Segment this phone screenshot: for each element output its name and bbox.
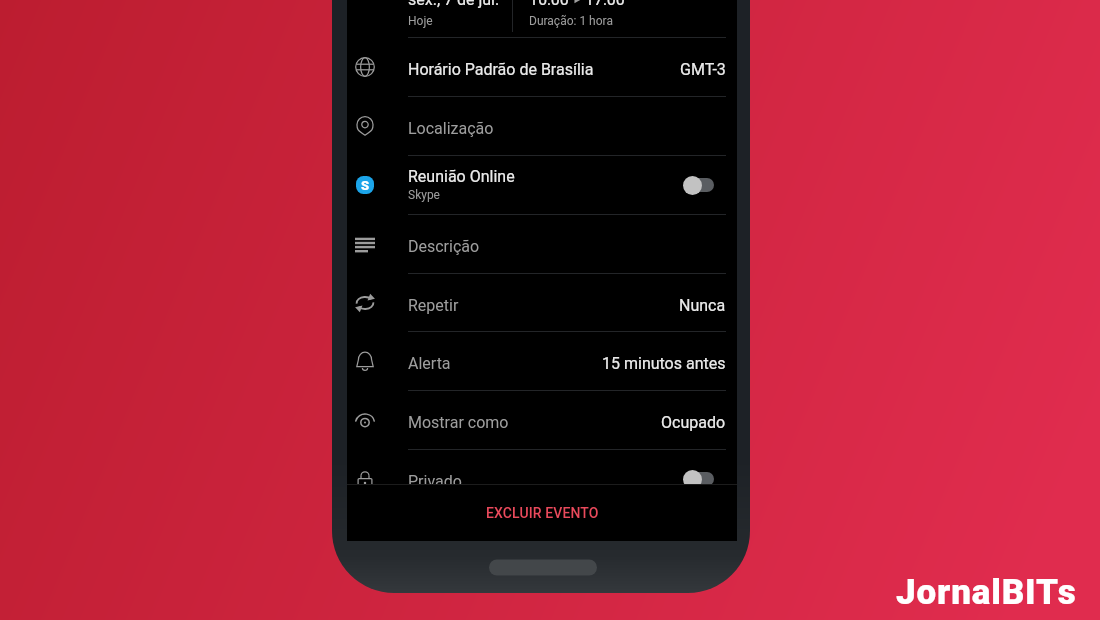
- other: Mostrar como: [347, 390, 383, 449]
- staticText: JornalBITs: [896, 572, 1077, 613]
- button[interactable]: EXCLUIR EVENTO: [347, 485, 737, 541]
- button[interactable]: Fuso horário: [347, 37, 737, 96]
- button[interactable]: sex., 7 de jul.: [347, 0, 737, 38]
- other: Repetir: [347, 273, 383, 332]
- staticText: Repetir: [408, 296, 459, 315]
- staticText: Alerta: [408, 354, 451, 373]
- staticText: Privado: [408, 472, 462, 491]
- button[interactable]: Repetir: [347, 273, 737, 332]
- staticText: GMT-3: [680, 60, 726, 79]
- staticText: Hoje: [408, 14, 433, 28]
- other: Descrição: [347, 214, 383, 273]
- staticText: Mostrar como: [408, 413, 509, 432]
- staticText: sex., 7 de jul.: [408, 0, 500, 9]
- staticText: Reunião Online: [408, 167, 515, 186]
- staticText: Duração: 1 hora: [529, 14, 613, 28]
- button[interactable]: Reunião online: [347, 155, 737, 214]
- button[interactable]: Descrição: [347, 214, 737, 273]
- staticText: Horário Padrão de Brasília: [408, 60, 594, 79]
- button[interactable]: Ativar Reunião Online: [683, 174, 714, 196]
- staticText: Skype: [408, 188, 440, 202]
- button[interactable]: Ativar Privado: [683, 468, 714, 490]
- other: Localização: [347, 96, 383, 155]
- staticText: 17:00: [585, 0, 625, 9]
- staticText: Descrição: [408, 237, 480, 256]
- staticText: Localização: [408, 119, 494, 138]
- staticText: 16:00: [529, 0, 569, 9]
- button[interactable]: Mostrar como: [347, 390, 737, 449]
- staticText: S: [361, 178, 370, 193]
- other: Privado: [347, 449, 383, 508]
- button[interactable]: Alerta: [347, 331, 737, 390]
- other: Reunião online: [347, 155, 383, 214]
- other: Fuso horário: [347, 37, 383, 96]
- button[interactable]: Localização: [347, 96, 737, 155]
- staticText: Nunca: [679, 296, 726, 315]
- staticText: EXCLUIR EVENTO: [486, 505, 599, 521]
- staticText: 15 minutos antes: [602, 354, 726, 373]
- staticText: Ocupado: [661, 413, 726, 432]
- other: Alerta: [347, 331, 383, 390]
- button[interactable]: Privado: [347, 449, 737, 508]
